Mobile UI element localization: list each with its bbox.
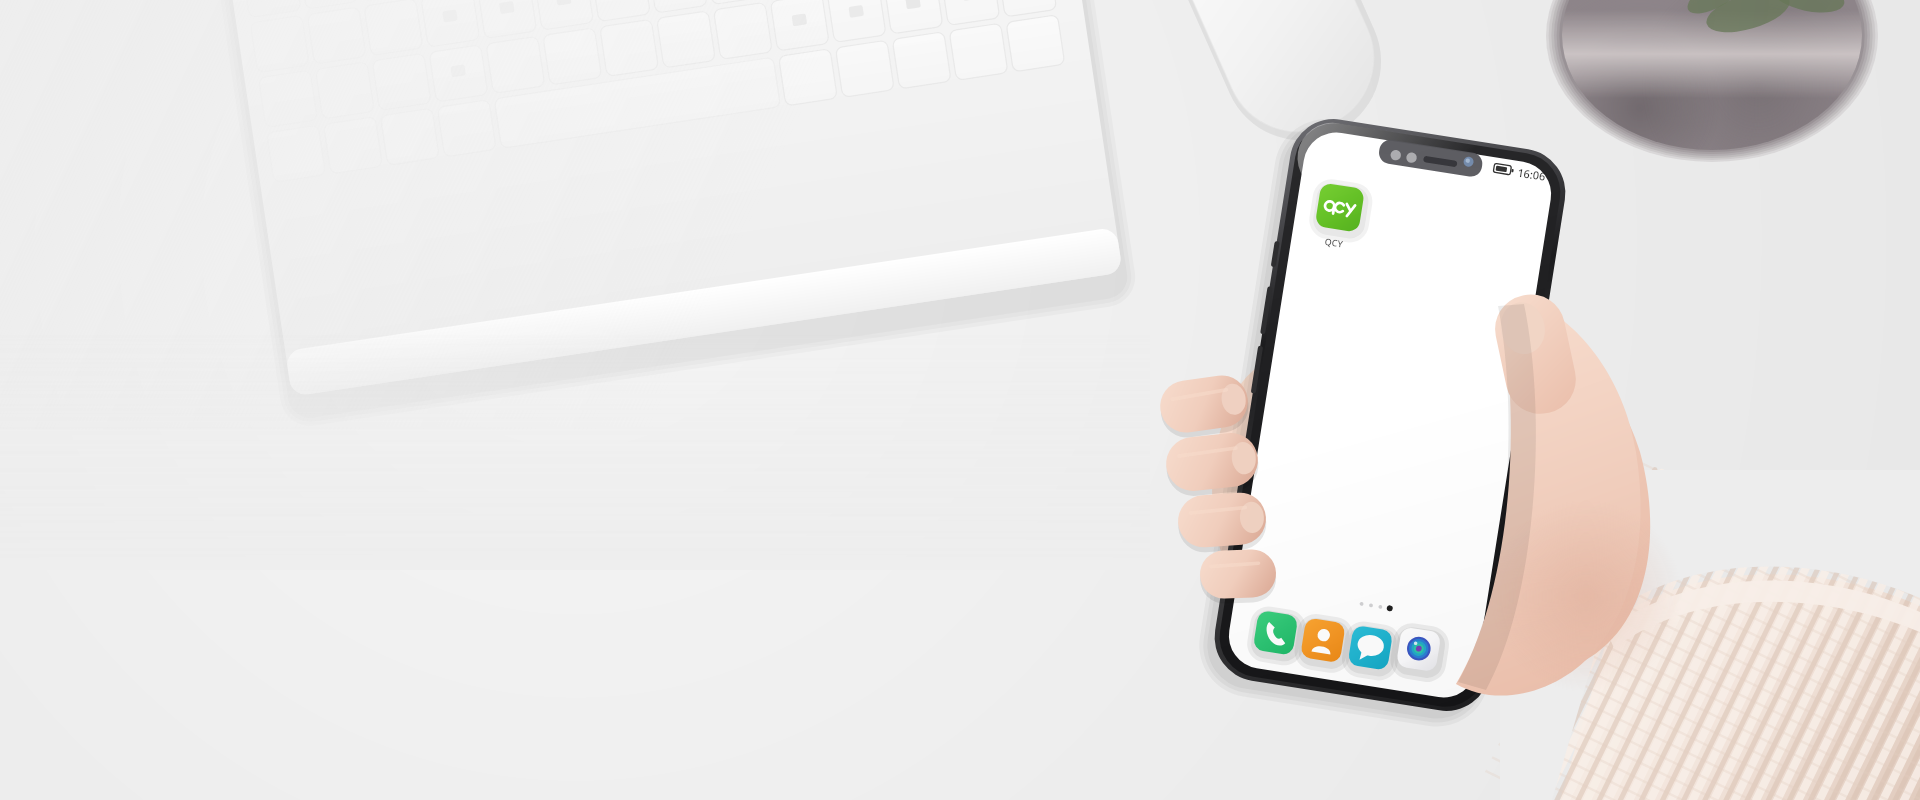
button[interactable]: QCY app on phone home screen: [0, 0, 1920, 800]
